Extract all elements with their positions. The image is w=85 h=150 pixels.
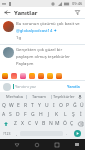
staticText: 09:46 — [72, 1, 83, 6]
button[interactable]: Ç — [68, 119, 75, 128]
staticText: Bu sorunun çözümü çok basit ve — [16, 21, 80, 27]
staticText: Ş — [72, 111, 75, 118]
button[interactable]: E — [15, 101, 22, 110]
staticText: Ğ — [73, 102, 77, 109]
staticText: X — [21, 120, 24, 127]
staticText: U — [45, 102, 49, 109]
button[interactable]: T — [29, 101, 36, 110]
button[interactable]: İ — [77, 110, 85, 119]
button[interactable]: Z — [11, 119, 19, 128]
button[interactable]: Yanıtla — [65, 83, 82, 90]
button[interactable]: Ğ — [71, 101, 78, 110]
staticText: J — [48, 111, 50, 118]
button[interactable]: V — [33, 119, 40, 128]
staticText: E — [17, 102, 20, 109]
button[interactable]: Voice input — [77, 94, 83, 100]
staticText: , — [16, 131, 18, 136]
button[interactable]: X — [19, 119, 26, 128]
staticText: 1g — [16, 35, 21, 41]
staticText: M — [55, 120, 60, 127]
button[interactable]: Gerçekten çok güzel bir — [3, 47, 82, 68]
staticText: R — [24, 102, 28, 109]
staticText: C — [28, 120, 32, 127]
staticText: . — [66, 131, 68, 136]
button[interactable]: Merhaba — [2, 94, 26, 99]
button[interactable]: Filter — [73, 8, 82, 17]
button[interactable]: Ş — [69, 110, 77, 119]
button[interactable]: S — [7, 110, 14, 119]
staticText: I — [53, 102, 55, 109]
staticText: P — [66, 102, 70, 109]
button[interactable]: N — [47, 119, 54, 128]
staticText: Yanıtla — [67, 84, 80, 89]
staticText: G — [31, 111, 35, 118]
button[interactable]: L — [61, 110, 69, 119]
staticText: V — [35, 120, 39, 127]
button[interactable]: Tamam — [27, 94, 51, 99]
staticText: ?123 — [3, 131, 11, 136]
button[interactable]: P — [64, 101, 71, 110]
staticText: Gerçekten çok güzel bir — [16, 47, 63, 53]
button[interactable]: W — [8, 101, 15, 110]
button[interactable]: Back — [3, 8, 12, 17]
button[interactable]: Teşekkürler — [52, 94, 76, 99]
button[interactable]: Emoji — [38, 73, 44, 79]
button[interactable]: Send — [70, 129, 84, 138]
button[interactable]: ?123 — [1, 129, 13, 138]
button[interactable]: F — [21, 110, 29, 119]
button[interactable]: D — [14, 110, 21, 119]
button[interactable]: O — [57, 101, 64, 110]
staticText: Ü — [80, 102, 84, 109]
button[interactable]: Emoji — [20, 73, 26, 79]
button[interactable]: G — [29, 110, 37, 119]
button[interactable]: B — [40, 119, 47, 128]
staticText: S — [9, 111, 12, 118]
button[interactable]: Backspace — [75, 119, 85, 128]
button[interactable]: Emoji — [2, 73, 8, 79]
staticText: L — [64, 111, 67, 118]
staticText: N — [49, 120, 53, 127]
button[interactable]: R — [22, 101, 29, 110]
button[interactable]: H — [37, 110, 45, 119]
button[interactable]: I — [50, 101, 57, 110]
button[interactable]: Keyboard — [72, 140, 81, 149]
button[interactable]: Emoji — [47, 73, 53, 79]
staticText: F — [24, 111, 27, 118]
button[interactable]: Emoji — [56, 73, 62, 79]
staticText: Z — [14, 120, 17, 127]
button[interactable]: Q — [0, 101, 8, 110]
staticText: Y — [38, 102, 41, 109]
button[interactable]: Ö — [61, 119, 68, 128]
button[interactable]: J — [45, 110, 53, 119]
staticText: O — [59, 102, 63, 109]
button[interactable]: Y — [36, 101, 43, 110]
staticText: A — [2, 111, 6, 118]
staticText: H — [39, 111, 43, 118]
button[interactable]: Emoji — [11, 73, 17, 79]
staticText: Yanıtını yaz — [15, 84, 36, 89]
staticText: Ö — [63, 120, 67, 127]
staticText: W — [9, 102, 14, 109]
button[interactable]: Emoji — [29, 73, 35, 79]
button[interactable]: A — [0, 110, 7, 119]
staticText: Ç — [70, 120, 74, 127]
staticText: Q — [2, 102, 6, 109]
button[interactable]: Ü — [78, 101, 85, 110]
staticText: K — [55, 111, 59, 118]
button[interactable]: U — [43, 101, 50, 110]
button[interactable]: Bu sorunun çözümü çok basit ve — [3, 21, 82, 42]
staticText: T — [31, 102, 34, 109]
button[interactable]: Back — [12, 140, 21, 149]
staticText: Paylaşım — [16, 61, 34, 67]
button[interactable]: Recents — [52, 140, 61, 149]
button[interactable]: K — [53, 110, 61, 119]
button[interactable]: Shift — [0, 119, 11, 128]
staticText: Yanıtlar — [14, 9, 38, 17]
button[interactable]: M — [54, 119, 61, 128]
button[interactable]: , — [13, 129, 20, 138]
button[interactable]: C — [26, 119, 33, 128]
button[interactable]: Home — [32, 140, 41, 149]
staticText: Tamam — [32, 94, 46, 99]
